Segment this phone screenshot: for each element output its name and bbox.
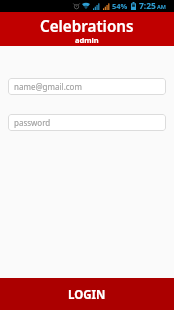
staticText: LOGIN	[68, 287, 106, 303]
staticText: 54%	[112, 1, 128, 11]
other: SIM 1 signal	[93, 3, 100, 10]
staticText: Celebrations	[40, 16, 134, 37]
staticText: name@gmail.com	[14, 81, 82, 92]
button[interactable]: name@gmail.com	[8, 78, 166, 95]
button[interactable]: password	[8, 114, 166, 131]
other: SIM 2 signal	[103, 3, 110, 10]
staticText: 7:25	[139, 0, 156, 12]
button[interactable]: LOGIN	[0, 278, 174, 310]
staticText: password	[14, 117, 51, 128]
staticText: AM	[157, 3, 166, 10]
other: Alarm set	[74, 3, 79, 9]
other: Battery 54 percent	[131, 2, 136, 10]
staticText: admin	[75, 35, 99, 45]
other: Wi-Fi	[82, 3, 90, 9]
